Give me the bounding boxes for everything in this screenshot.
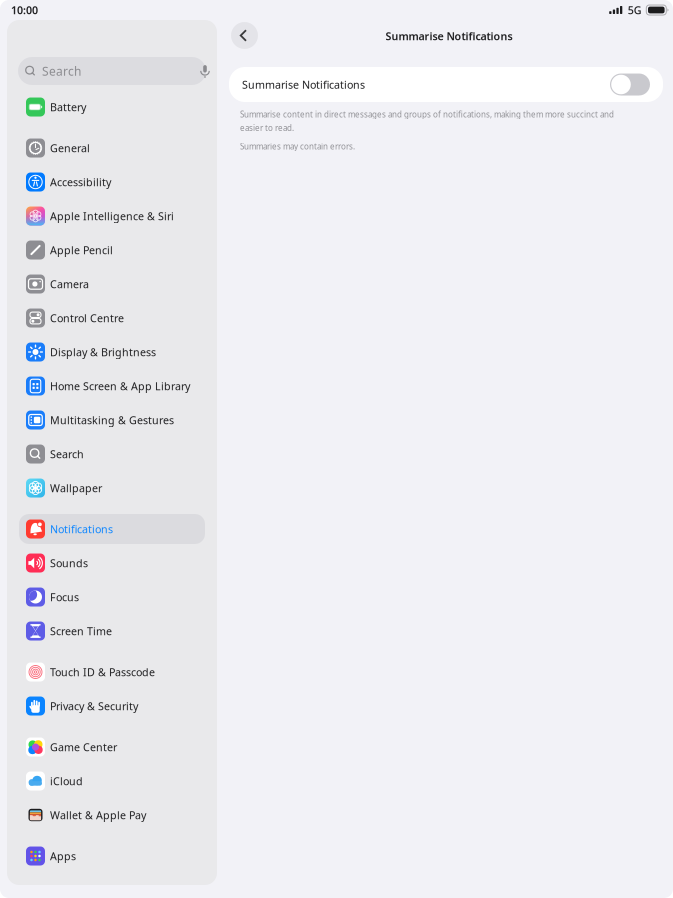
button[interactable]: Camera <box>7 267 217 301</box>
staticText: 10:00 <box>11 3 38 17</box>
button[interactable]: Wallpaper <box>7 471 217 505</box>
staticText: Apple Pencil <box>50 243 113 257</box>
staticText: Sounds <box>50 556 88 570</box>
button[interactable]: Game Center <box>7 730 217 764</box>
button[interactable]: General <box>7 131 217 165</box>
staticText: General <box>50 141 90 155</box>
staticText: Privacy & Security <box>50 699 138 713</box>
staticText: Multitasking & Gestures <box>50 413 174 427</box>
staticText: Wallet & Apple Pay <box>50 808 146 822</box>
button[interactable]: Sounds <box>7 546 217 580</box>
button[interactable]: Notifications <box>7 512 217 546</box>
staticText: Touch ID & Passcode <box>50 665 155 679</box>
button[interactable]: Wallet & Apple Pay <box>7 798 217 832</box>
button[interactable]: Display & Brightness <box>7 335 217 369</box>
button[interactable]: Privacy & Security <box>7 689 217 723</box>
staticText: Camera <box>50 277 89 291</box>
staticText: Accessibility <box>50 175 111 189</box>
button[interactable]: Apps <box>7 839 217 873</box>
button[interactable]: iCloud <box>7 764 217 798</box>
staticText: Wallpaper <box>50 481 102 495</box>
button[interactable]: Touch ID & Passcode <box>7 655 217 689</box>
staticText: Display & Brightness <box>50 345 156 359</box>
staticText: Apps <box>50 849 76 863</box>
button[interactable]: Apple Pencil <box>7 233 217 267</box>
staticText: Summarise Notifications <box>242 77 365 92</box>
button[interactable]: Back <box>231 22 258 49</box>
staticText: Home Screen & App Library <box>50 379 190 393</box>
staticText: easier to read. <box>240 123 294 133</box>
staticText: Summaries may contain errors. <box>240 141 355 152</box>
button[interactable]: Summarise Notifications <box>229 67 663 102</box>
staticText: Notifications <box>50 522 113 536</box>
button[interactable]: Accessibility <box>7 165 217 199</box>
staticText: Search <box>50 447 84 461</box>
staticText: Summarise Notifications <box>385 29 512 43</box>
staticText: Focus <box>50 590 79 604</box>
staticText: Screen Time <box>50 624 112 638</box>
staticText: Apple Intelligence & Siri <box>50 209 174 223</box>
staticText: Search <box>42 63 81 79</box>
button[interactable]: Multitasking & Gestures <box>7 403 217 437</box>
button[interactable]: Battery <box>7 90 217 124</box>
staticText: Control Centre <box>50 311 124 325</box>
staticText: Battery <box>50 100 86 114</box>
staticText: 5G <box>628 3 642 17</box>
staticText: iCloud <box>50 774 83 788</box>
button[interactable]: Apple Intelligence & Siri <box>7 199 217 233</box>
button[interactable]: Search <box>7 437 217 471</box>
staticText: Game Center <box>50 740 117 754</box>
staticText: Summarise content in direct messages and… <box>240 109 614 120</box>
button[interactable]: Focus <box>7 580 217 614</box>
button[interactable]: Home Screen & App Library <box>7 369 217 403</box>
button[interactable]: Control Centre <box>7 301 217 335</box>
button[interactable]: Screen Time <box>7 614 217 648</box>
